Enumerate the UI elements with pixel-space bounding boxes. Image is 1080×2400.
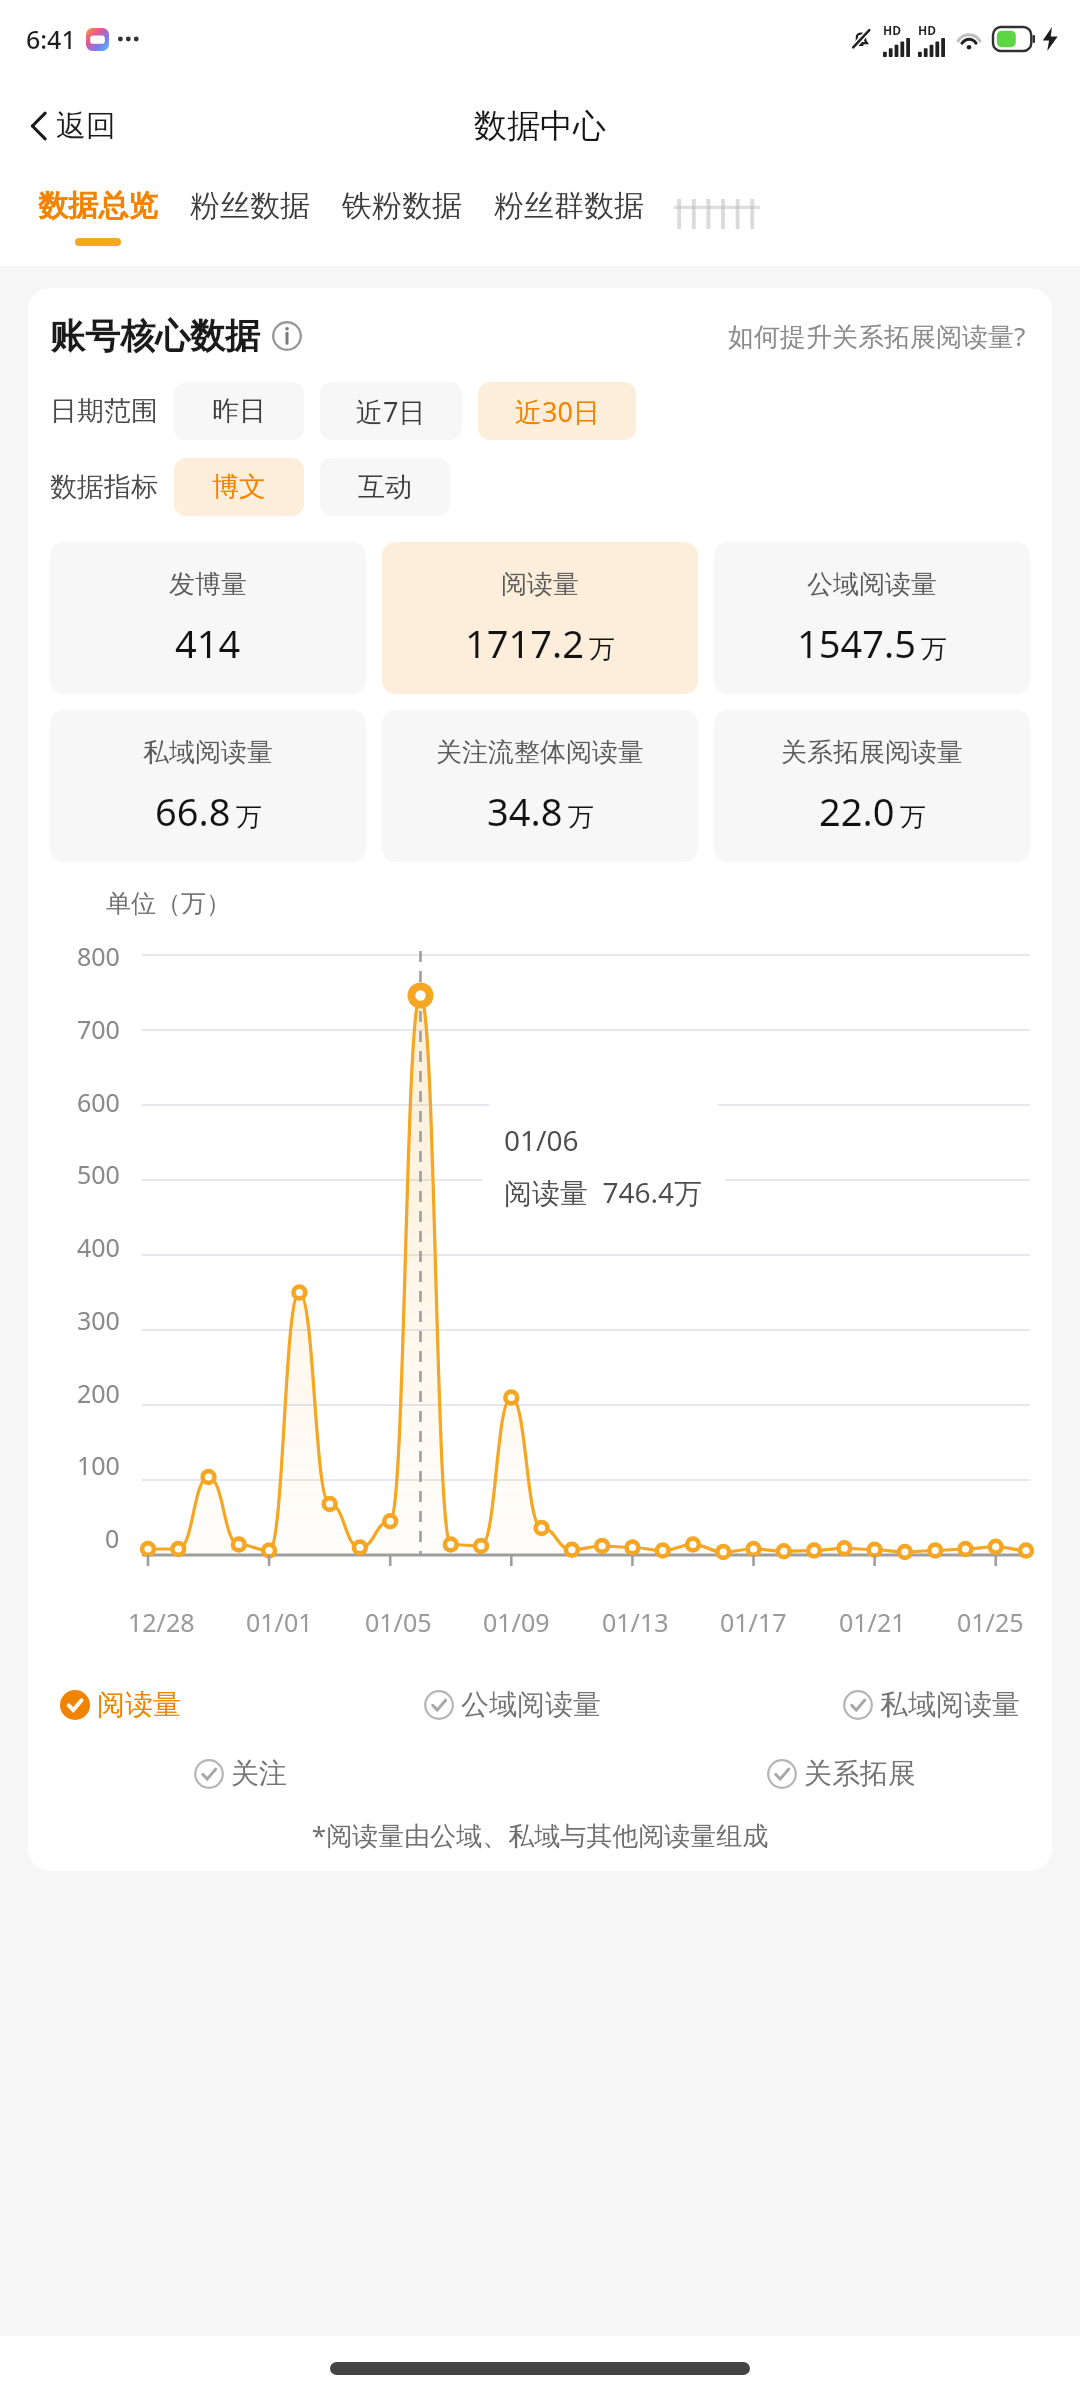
button[interactable]: 关系拓展 <box>763 1752 920 1795</box>
staticText: 200 <box>77 1376 120 1410</box>
staticText: 100 <box>77 1448 120 1482</box>
button[interactable] <box>674 193 760 233</box>
staticText: 单位（万） <box>106 888 231 919</box>
button[interactable]: 关系拓展阅读量 <box>714 710 1030 862</box>
staticText: 返回 <box>56 107 116 145</box>
button[interactable]: 博文 <box>174 458 304 516</box>
staticText: 01/13 <box>602 1605 669 1639</box>
staticText: 关系拓展 <box>804 1756 916 1791</box>
staticText: 34.8 <box>487 785 563 837</box>
staticText: 近30日 <box>515 393 600 430</box>
button[interactable]: 互动 <box>320 458 450 516</box>
staticText: HD <box>883 22 901 38</box>
staticText: 01/06 <box>504 1121 579 1159</box>
button[interactable]: 阅读量 <box>56 1683 185 1726</box>
staticText: 66.8 <box>155 785 231 837</box>
staticText: 万 <box>568 801 594 834</box>
staticText: HD <box>918 22 936 38</box>
staticText: 发博量 <box>169 568 247 601</box>
staticText: 互动 <box>358 470 412 504</box>
button[interactable]: 说明 <box>270 319 304 353</box>
button[interactable]: 粉丝数据 <box>174 173 326 238</box>
button[interactable]: 返回 <box>20 101 124 151</box>
staticText: 私域阅读量 <box>880 1687 1020 1722</box>
staticText: 关注流整体阅读量 <box>436 736 644 769</box>
staticText: 0 <box>105 1521 120 1555</box>
staticText: 阅读量 746.4万 <box>504 1173 703 1211</box>
staticText: 万 <box>589 633 615 666</box>
staticText: 万 <box>236 801 262 834</box>
button[interactable]: 粉丝群数据 <box>478 173 660 238</box>
staticText: 博文 <box>212 470 266 504</box>
staticText: 数据总览 <box>38 187 158 225</box>
staticText: *阅读量由公域、私域与其他阅读量组成 <box>50 1817 1030 1853</box>
staticText: 数据中心 <box>474 105 606 147</box>
staticText: 万 <box>900 801 926 834</box>
staticText: 昨日 <box>212 394 266 428</box>
staticText: 300 <box>77 1303 120 1337</box>
staticText: 01/21 <box>839 1605 906 1639</box>
button[interactable]: 昨日 <box>174 382 304 440</box>
button[interactable]: 公域阅读量 <box>420 1683 605 1726</box>
button[interactable]: 数据总览 <box>22 173 174 246</box>
staticText: 01/05 <box>365 1605 432 1639</box>
staticText: 01/25 <box>957 1605 1024 1639</box>
button[interactable]: 近30日 <box>478 382 636 440</box>
button[interactable]: 发博量 <box>50 542 366 694</box>
button[interactable]: 铁粉数据 <box>326 173 478 238</box>
button[interactable]: 关注流整体阅读量 <box>382 710 698 862</box>
staticText: 如何提升关系拓展阅读量? <box>728 318 1026 354</box>
staticText: 铁粉数据 <box>342 187 462 225</box>
button[interactable]: 私域阅读量 <box>839 1683 1024 1726</box>
button[interactable]: 如何提升关系拓展阅读量? <box>724 314 1030 358</box>
staticText: 阅读量 <box>97 1687 181 1722</box>
staticText: 公域阅读量 <box>807 568 937 601</box>
button[interactable]: 阅读量 <box>382 542 698 694</box>
staticText: 账号核心数据 <box>50 314 260 358</box>
staticText: 数据指标 <box>50 470 158 504</box>
staticText: 关系拓展阅读量 <box>781 736 963 769</box>
staticText: 粉丝数据 <box>190 187 310 225</box>
staticText: 公域阅读量 <box>461 1687 601 1722</box>
staticText: 01/17 <box>720 1605 787 1639</box>
staticText: 800 <box>77 939 120 973</box>
staticText: 500 <box>77 1157 120 1191</box>
staticText: 600 <box>77 1085 120 1119</box>
staticText: 1717.2 <box>465 617 584 669</box>
staticText: 01/09 <box>483 1605 550 1639</box>
staticText: 12/28 <box>128 1605 195 1639</box>
button[interactable]: 私域阅读量 <box>50 710 366 862</box>
staticText: 414 <box>175 617 241 669</box>
button[interactable]: 近7日 <box>320 382 462 440</box>
staticText: 6:41 <box>26 22 76 56</box>
staticText: 粉丝群数据 <box>494 187 644 225</box>
staticText: 22.0 <box>819 785 895 837</box>
staticText: 私域阅读量 <box>143 736 273 769</box>
staticText: 1547.5 <box>797 617 916 669</box>
button[interactable]: 公域阅读量 <box>714 542 1030 694</box>
staticText: 日期范围 <box>50 394 158 428</box>
staticText: 阅读量 <box>501 568 579 601</box>
staticText: 近7日 <box>356 393 426 430</box>
staticText: 关注 <box>231 1756 287 1791</box>
staticText: 01/01 <box>246 1605 313 1639</box>
button[interactable]: 关注 <box>190 1752 291 1795</box>
staticText: 700 <box>77 1012 120 1046</box>
staticText: 400 <box>77 1230 120 1264</box>
staticText: 万 <box>921 633 947 666</box>
